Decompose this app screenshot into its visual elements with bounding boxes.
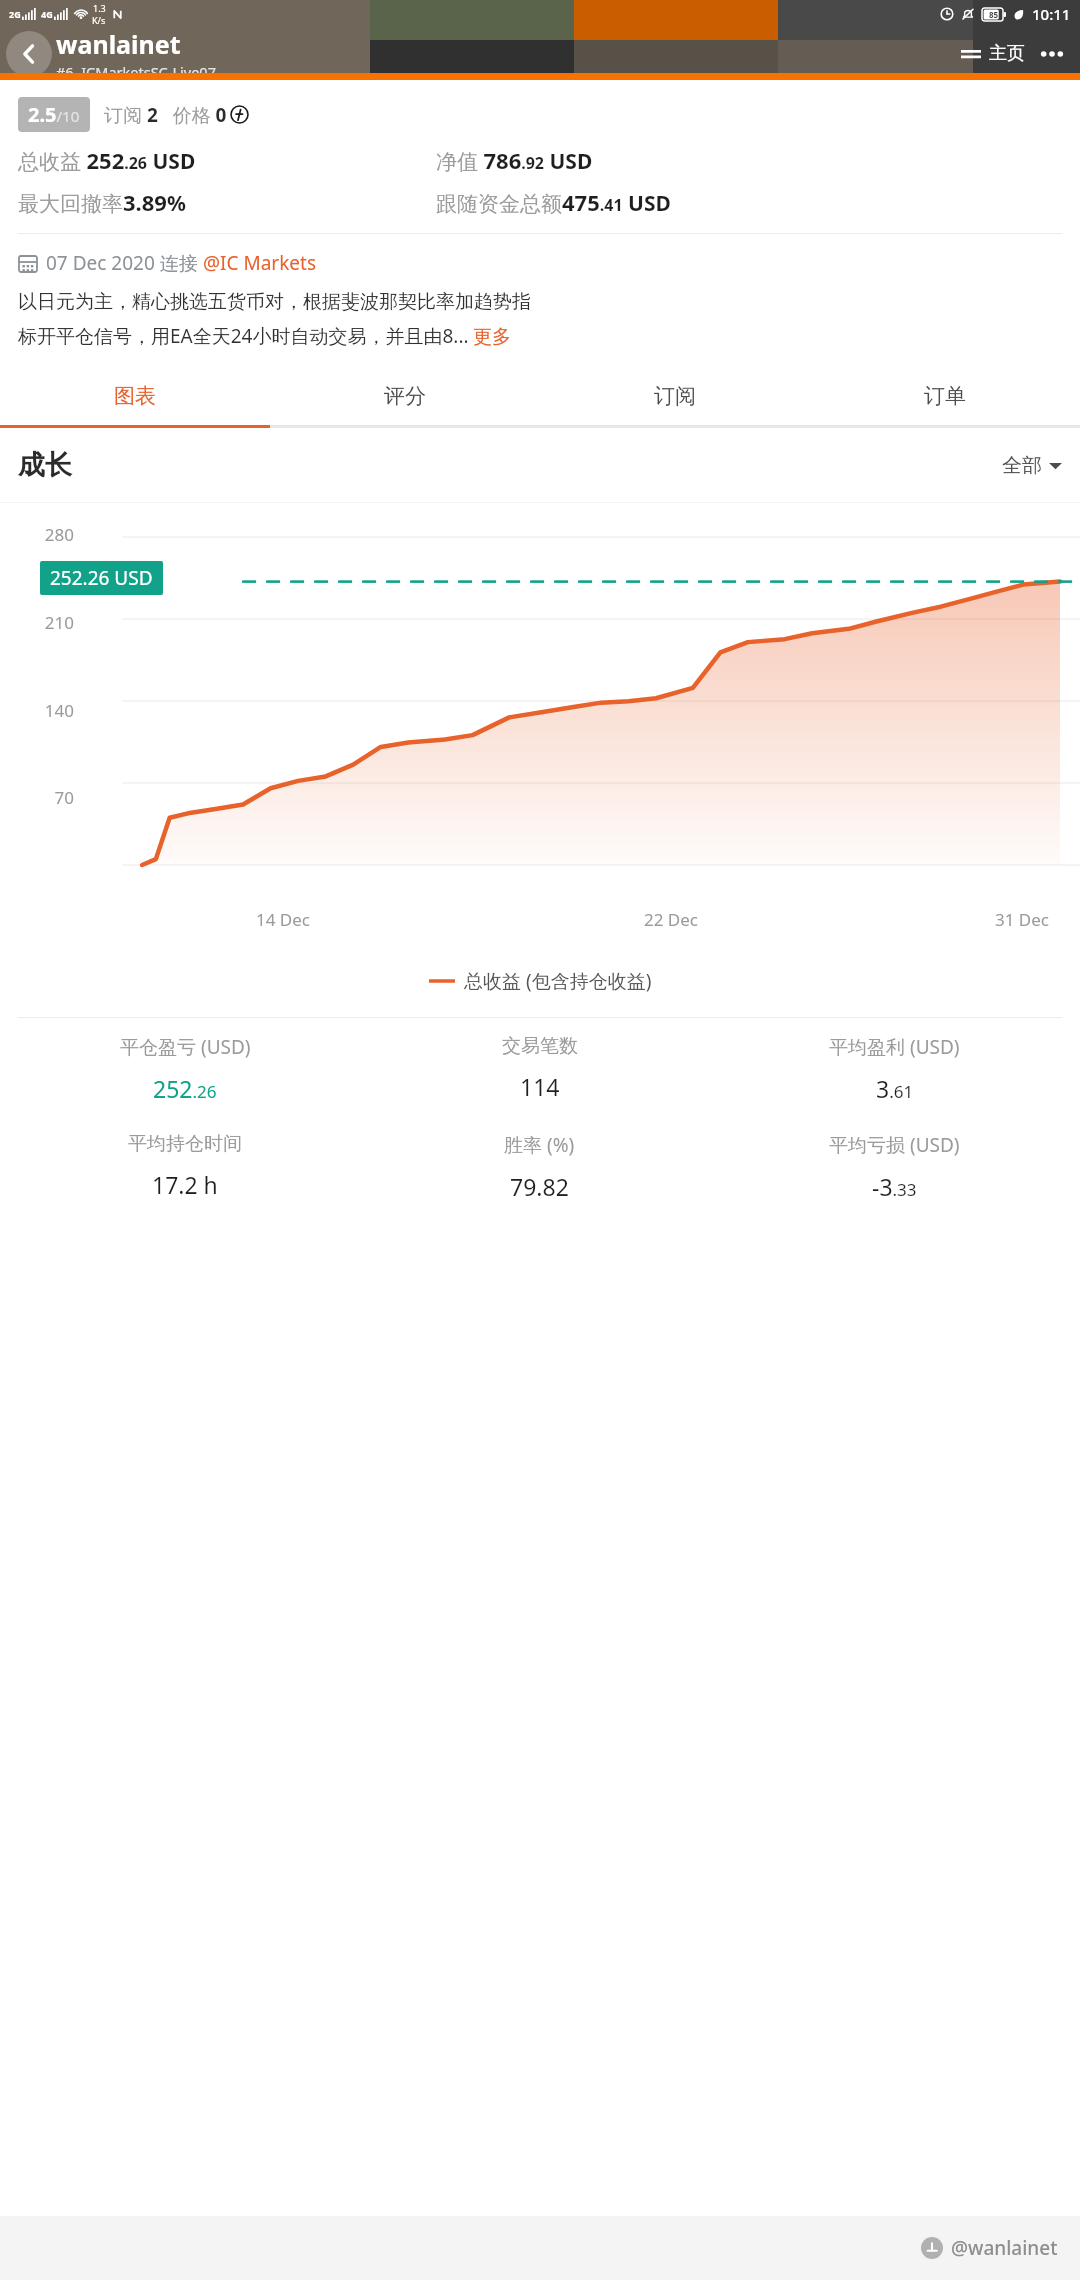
- staticText: #6 ICMarketsSC-Live07: [56, 62, 216, 80]
- staticText: 140: [0, 699, 74, 722]
- button[interactable]: 平均亏损 (USD): [717, 1132, 1072, 1202]
- staticText: 114: [520, 1071, 560, 1102]
- staticText: 主页: [989, 42, 1025, 65]
- staticText: 17.2 h: [152, 1169, 218, 1200]
- button[interactable]: 全部: [1002, 453, 1062, 478]
- staticText: 成长: [18, 448, 72, 482]
- staticText: @wanlainet: [951, 2235, 1058, 2261]
- button[interactable]: 订单: [810, 367, 1080, 425]
- staticText: -3.33: [872, 1171, 917, 1202]
- staticText: 280: [0, 523, 74, 546]
- button[interactable]: 更多: [473, 325, 511, 349]
- staticText: 跟随资金总额475.41 USD: [436, 187, 671, 217]
- staticText: 平仓盈亏 (USD): [120, 1034, 251, 1060]
- staticText: 07 Dec 2020 连接: [46, 250, 203, 276]
- button[interactable]: 主页: [955, 34, 1030, 73]
- button[interactable]: 平均持仓时间: [8, 1132, 362, 1200]
- staticText: 2G: [9, 8, 21, 20]
- button[interactable]: 07 Dec 2020 连接: [18, 250, 317, 276]
- staticText: 平均亏损 (USD): [829, 1132, 960, 1158]
- staticText: 总收益 (包含持仓收益): [464, 968, 652, 994]
- button[interactable]: 图表: [0, 367, 270, 425]
- staticText: wanlainet: [56, 27, 181, 61]
- staticText: 全部: [1002, 453, 1042, 478]
- button[interactable]: 平均盈利 (USD): [717, 1034, 1072, 1104]
- staticText: 3.61: [876, 1073, 914, 1104]
- staticText: @IC Markets: [203, 250, 317, 276]
- staticText: 订单: [924, 383, 966, 409]
- button[interactable]: 2.5/10: [18, 97, 90, 132]
- staticText: 总收益 252.26 USD: [18, 145, 196, 175]
- staticText: 210: [0, 611, 74, 634]
- staticText: 最大回撤率3.89%: [18, 187, 186, 217]
- staticText: 79.82: [510, 1171, 569, 1202]
- staticText: 胜率 (%): [504, 1132, 575, 1158]
- staticText: 交易笔数: [502, 1034, 578, 1058]
- button[interactable]: 评分: [270, 367, 540, 425]
- staticText: 14 Dec: [256, 908, 311, 931]
- button[interactable]: 胜率 (%): [362, 1132, 717, 1202]
- staticText: 订阅 2 价格 0: [104, 102, 227, 128]
- staticText: 2.5/10: [28, 101, 80, 128]
- staticText: 252.26 USD: [50, 565, 153, 591]
- button[interactable]: More options: [1030, 32, 1074, 76]
- staticText: 1.3: [93, 2, 106, 14]
- staticText: 以日元为主，精心挑选五货币对，根据斐波那契比率加趋势指: [18, 290, 531, 314]
- button[interactable]: Back: [6, 31, 52, 77]
- staticText: 订阅: [654, 383, 696, 409]
- staticText: 标开平仓信号，用EA全天24小时自动交易，并且由8...: [18, 323, 469, 349]
- staticText: 31 Dec: [995, 908, 1050, 931]
- staticText: 10:11: [1032, 4, 1071, 24]
- staticText: 评分: [384, 383, 426, 409]
- staticText: 4G: [41, 8, 53, 20]
- staticText: 85: [989, 9, 999, 20]
- staticText: K/s: [92, 14, 106, 26]
- button[interactable]: 订阅: [540, 367, 810, 425]
- staticText: 平均持仓时间: [128, 1132, 242, 1156]
- staticText: 平均盈利 (USD): [829, 1034, 960, 1060]
- staticText: 图表: [114, 383, 156, 409]
- staticText: 70: [0, 786, 74, 809]
- staticText: 252.26: [153, 1073, 217, 1104]
- button[interactable]: 交易笔数: [362, 1034, 717, 1102]
- staticText: 22 Dec: [644, 908, 699, 931]
- button[interactable]: 平仓盈亏 (USD): [8, 1034, 362, 1104]
- staticText: 净值 786.92 USD: [436, 145, 593, 175]
